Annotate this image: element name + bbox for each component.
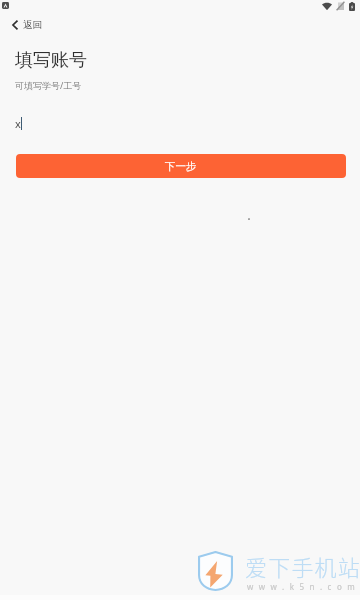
button[interactable]: 返回	[0, 13, 54, 37]
other: No signal	[337, 2, 344, 10]
other: Wi-Fi	[322, 3, 332, 10]
staticText: www.k5n.com	[247, 581, 360, 592]
button[interactable]: 账号输入框	[0, 112, 360, 134]
staticText: 下一步	[165, 160, 197, 173]
other: Notification	[2, 2, 9, 9]
button[interactable]: 下一步	[16, 154, 346, 178]
staticText: 可填写学号/工号	[15, 79, 82, 91]
staticText: 爱下手机站	[245, 550, 360, 582]
other: Battery	[349, 2, 355, 11]
staticText: 填写账号	[15, 49, 87, 72]
staticText: x	[15, 116, 21, 131]
staticText: 返回	[23, 19, 42, 31]
